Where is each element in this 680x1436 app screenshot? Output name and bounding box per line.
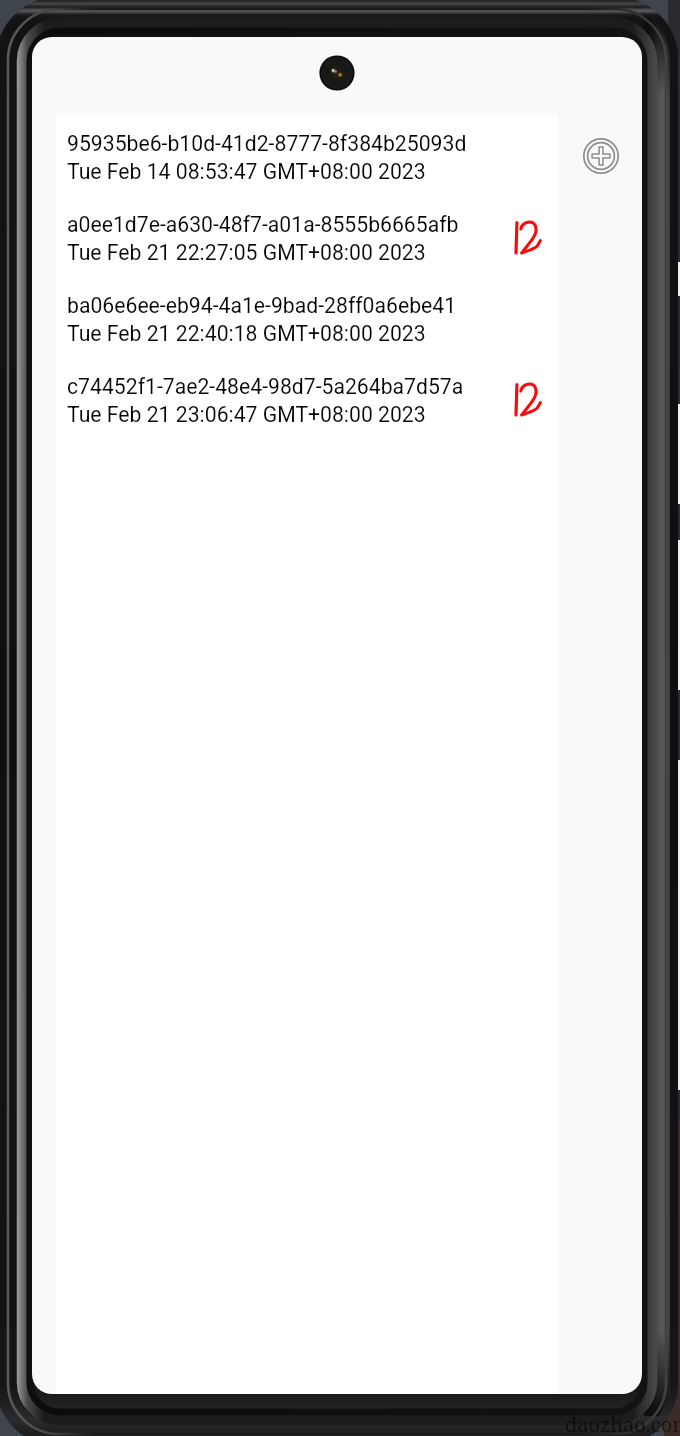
staticText: Tue Feb 14 08:53:47 GMT+08:00 2023 [67, 159, 426, 184]
staticText: Tue Feb 21 22:40:18 GMT+08:00 2023 [67, 321, 426, 346]
staticText: Tue Feb 21 23:06:47 GMT+08:00 2023 [67, 402, 426, 427]
staticText: 95935be6-b10d-41d2-8777-8f384b25093d [67, 131, 467, 156]
staticText: a0ee1d7e-a630-48f7-a01a-8555b6665afb [67, 212, 459, 237]
button[interactable]: c74452f1-7ae2-48e4-98d7-5a264ba7d57a [56, 358, 558, 439]
staticText: c74452f1-7ae2-48e4-98d7-5a264ba7d57a [67, 374, 464, 399]
button[interactable]: 95935be6-b10d-41d2-8777-8f384b25093d [56, 115, 558, 196]
staticText: ba06e6ee-eb94-4a1e-9bad-28ff0a6ebe41 [67, 293, 457, 318]
button[interactable]: Add [581, 136, 621, 176]
staticText: daozhao.com [565, 1411, 680, 1436]
button[interactable]: a0ee1d7e-a630-48f7-a01a-8555b6665afb [56, 196, 558, 277]
button[interactable]: ba06e6ee-eb94-4a1e-9bad-28ff0a6ebe41 [56, 277, 558, 358]
staticText: Tue Feb 21 22:27:05 GMT+08:00 2023 [67, 240, 426, 265]
